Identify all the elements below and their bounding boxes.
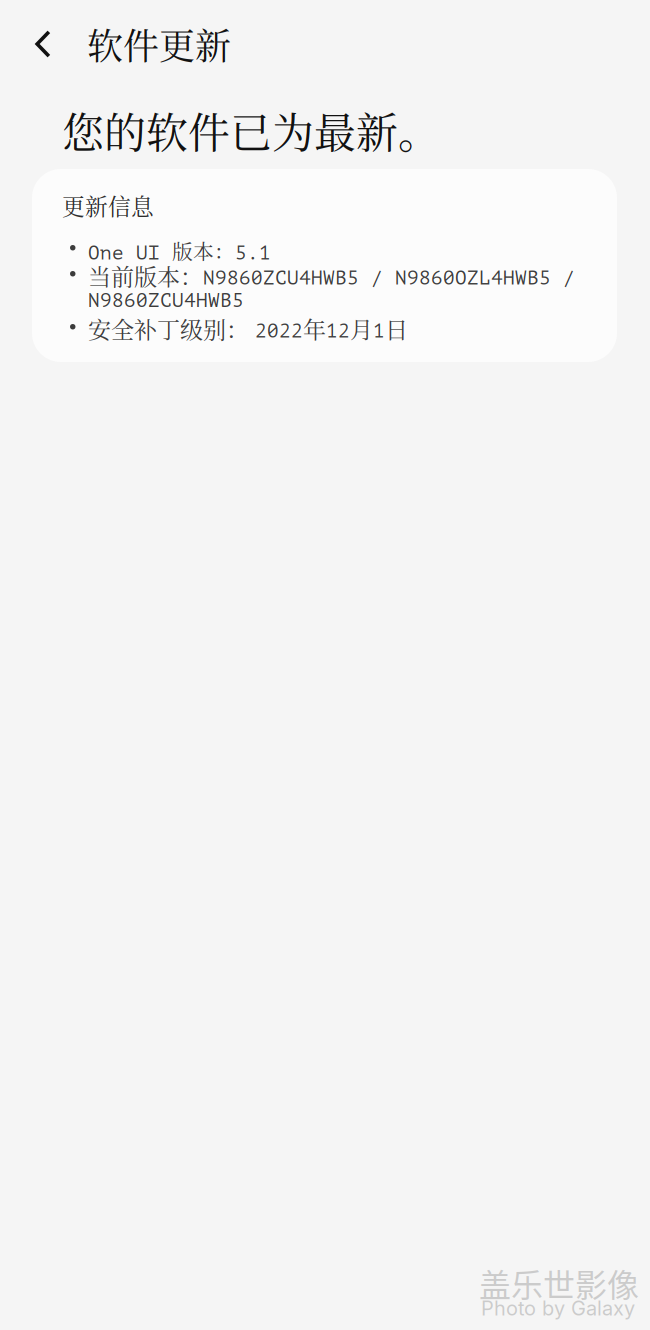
staticText: N9860ZCU4HWB5 — [88, 290, 244, 312]
staticText: One UI 版本：5.1 — [88, 236, 271, 265]
staticText: 软件更新 — [87, 18, 231, 70]
staticText: 您的软件已为最新。 — [62, 100, 440, 160]
staticText: 安全补丁级别： 2022年12月1日 — [88, 312, 408, 344]
staticText: Photo by Galaxy — [481, 1296, 635, 1320]
staticText: 当前版本：N9860ZCU4HWB5 / N9860OZL4HWB5 / — [88, 259, 575, 291]
staticText: 盖乐世影像 — [479, 1260, 639, 1306]
button[interactable]: Back — [14, 14, 72, 74]
staticText: 更新信息 — [62, 189, 154, 222]
